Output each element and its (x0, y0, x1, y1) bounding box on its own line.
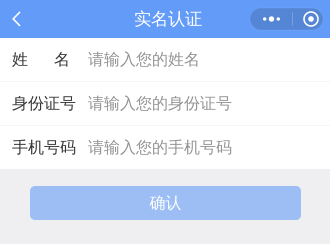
staticText: 名 (54, 50, 70, 69)
button[interactable]: 确认 (30, 186, 301, 220)
staticText: 身份证号 (12, 94, 76, 113)
staticText: 请输入您的身份证号 (88, 94, 232, 113)
button[interactable]: 身份证号 (0, 82, 330, 125)
button[interactable]: 手机号码 (0, 126, 330, 169)
button[interactable]: 姓 (0, 38, 330, 81)
staticText: 手机号码 (12, 138, 76, 157)
button[interactable]: Back (0, 0, 44, 38)
staticText: 姓 (12, 50, 28, 69)
staticText: 请输入您的姓名 (88, 50, 200, 69)
button[interactable]: More options (250, 8, 330, 30)
staticText: 实名认证 (134, 8, 202, 30)
staticText: 请输入您的手机号码 (88, 138, 232, 157)
staticText: 确认 (149, 193, 181, 213)
